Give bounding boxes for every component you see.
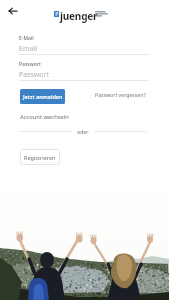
button[interactable]: Account wechseln (18, 111, 71, 123)
button[interactable]: Passwort vergessen? (93, 89, 148, 100)
button[interactable]: Back (5, 3, 21, 19)
staticText: juenger (60, 9, 98, 23)
staticText: Passwort vergessen? (95, 91, 146, 98)
staticText: E-Mail (19, 35, 34, 42)
staticText: Passwort (19, 70, 50, 80)
staticText: oder (77, 128, 89, 135)
button[interactable]: Registrieren (20, 149, 60, 165)
staticText: Passwort (19, 61, 41, 68)
button[interactable]: Jetzt anmelden (20, 89, 65, 104)
staticText: Jetzt anmelden (23, 93, 63, 100)
staticText: Account wechseln (20, 113, 69, 121)
staticText: Registrieren (24, 154, 56, 161)
staticText: Email (19, 44, 37, 54)
